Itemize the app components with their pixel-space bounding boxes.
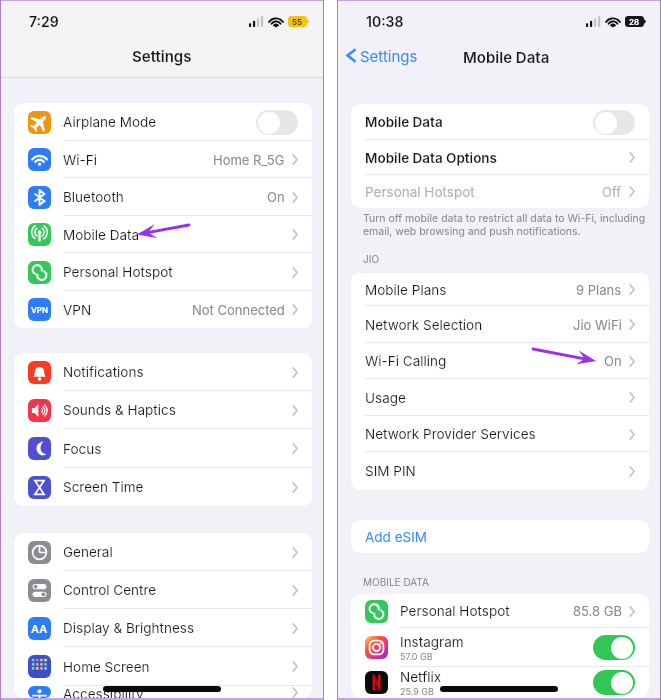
staticText: AA [31,622,48,635]
button[interactable]: Bluetooth [14,178,312,216]
staticText: 57.0 GB [400,651,433,662]
staticText: General [63,544,113,560]
button[interactable]: Personal Hotspot [14,253,312,291]
button[interactable]: Home Screen [14,647,312,686]
staticText: Network Selection [365,317,483,333]
button[interactable]: Mobile Data [14,216,312,253]
staticText: Control Centre [63,582,157,598]
staticText: MOBILE DATA [363,576,429,588]
button[interactable]: Toggle on [593,635,635,660]
staticText: Accessibility [63,686,144,698]
staticText: Network Provider Services [365,426,536,442]
button[interactable]: Network Selection [351,306,649,343]
button[interactable]: Toggle off [593,110,635,135]
staticText: Mobile Data [365,114,443,130]
button[interactable]: Airplane Mode [14,103,312,141]
staticText: Add eSIM [365,529,427,545]
button[interactable]: Notifications [14,353,312,391]
button[interactable]: Mobile Data Options [351,140,649,175]
staticText: Mobile Data [63,227,140,243]
button[interactable]: Network Provider Services [351,416,649,452]
button[interactable]: Usage [351,379,649,416]
staticText: Home Screen [63,659,150,675]
staticText: JIO [363,253,380,265]
staticText: Mobile Plans [365,282,447,298]
staticText: Mobile Data Options [365,150,498,166]
button[interactable]: Wi-Fi Calling [351,343,649,379]
staticText: Personal Hotspot [63,264,173,280]
staticText: On [267,189,285,205]
staticText: Wi-Fi Calling [365,353,447,369]
button[interactable]: Screen Time [14,468,312,506]
staticText: Not Connected [192,302,285,318]
staticText: Airplane Mode [63,114,157,130]
button[interactable]: Personal Hotspot [351,175,649,208]
button[interactable]: Toggle off [256,110,298,135]
staticText: Off [602,184,622,200]
staticText: Sounds & Haptics [63,402,176,418]
button[interactable]: Settings [345,46,418,65]
button[interactable]: Instagram [351,628,649,667]
staticText: Bluetooth [63,189,124,205]
staticText: Instagram [400,634,464,650]
staticText: On [604,353,622,369]
button[interactable]: Personal Hotspot [351,594,649,628]
staticText: Settings [132,47,192,65]
staticText: Focus [63,441,102,457]
staticText: Usage [365,390,406,406]
staticText: Home R_5G [213,152,285,168]
staticText: 9 Plans [576,282,622,298]
button[interactable]: AA [14,609,312,647]
staticText: 85.8 GB [573,603,622,619]
staticText: Personal Hotspot [365,184,475,200]
staticText: Screen Time [63,479,144,495]
staticText: Display & Brightness [63,620,195,636]
staticText: VPN [31,305,49,315]
staticText: Wi-Fi [63,152,98,168]
staticText: Personal Hotspot [400,603,510,619]
button[interactable]: Wi-Fi [14,141,312,178]
button[interactable]: General [14,533,312,571]
button[interactable]: Add eSIM [351,520,649,553]
staticText: Settings [360,47,418,65]
staticText: SIM PIN [365,463,416,479]
staticText: Jio WiFi [573,317,622,333]
staticText: Mobile Data [463,48,550,66]
staticText: 10:38 [366,13,404,30]
staticText: Notifications [63,364,144,380]
button[interactable]: Mobile Data [351,104,649,140]
button[interactable]: VPN [14,291,312,328]
staticText: VPN [63,302,92,318]
button[interactable]: Sounds & Haptics [14,391,312,429]
button[interactable]: SIM PIN [351,452,649,490]
button[interactable]: Control Centre [14,571,312,609]
staticText: Turn off mobile data to restrict all dat… [363,212,646,237]
button[interactable]: Accessibility [14,686,312,698]
staticText: 25.9 GB [400,686,434,697]
staticText: Netflix [400,669,442,685]
button[interactable]: Toggle on [593,670,635,695]
button[interactable]: Mobile Plans [351,273,649,306]
button[interactable]: Focus [14,429,312,468]
button[interactable]: Netflix [351,667,649,698]
staticText: 28 [629,17,640,27]
staticText: 7:29 [29,13,59,30]
staticText: 55 [292,17,303,27]
